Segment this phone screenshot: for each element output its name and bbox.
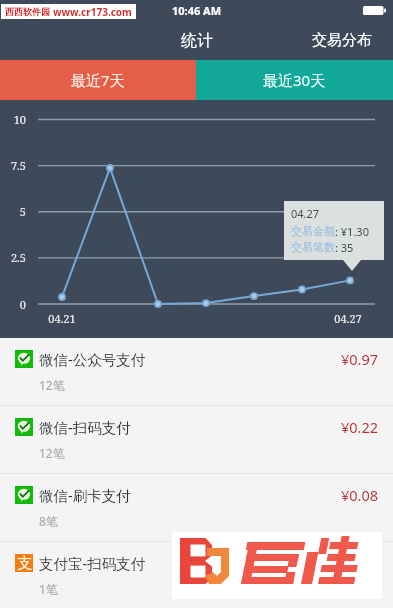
staticText: 统计 xyxy=(181,31,213,51)
staticText: 支付宝-扫码支付 xyxy=(39,553,146,573)
staticText: 交易分布 xyxy=(312,31,372,50)
staticText: 12笔 xyxy=(39,377,65,393)
button[interactable]: 微信-扫码支付 xyxy=(0,406,393,473)
button[interactable]: 支 xyxy=(0,542,393,608)
staticText: 5 xyxy=(0,204,26,219)
staticText: ¥0.97 xyxy=(341,349,379,369)
staticText: 04.21 xyxy=(42,311,82,326)
staticText: 支 xyxy=(17,554,32,572)
staticText: 1笔 xyxy=(39,581,58,597)
staticText: ¥0.01 xyxy=(341,553,379,573)
staticText: www.cr173.com xyxy=(53,5,132,19)
button[interactable]: 最近30天 xyxy=(196,60,393,100)
staticText: ¥0.08 xyxy=(341,485,379,505)
staticText: 10:46 AM xyxy=(172,3,222,18)
staticText: 12笔 xyxy=(39,445,65,461)
staticText: 最近30天 xyxy=(263,70,326,90)
staticText: 微信-刷卡支付 xyxy=(39,485,131,505)
other: Battery full xyxy=(363,5,386,16)
button[interactable]: 微信-公众号支付 xyxy=(0,338,393,405)
staticText: 最近7天 xyxy=(71,70,125,90)
button[interactable]: 微信-刷卡支付 xyxy=(0,474,393,541)
staticText: 10 xyxy=(0,112,26,127)
staticText: ¥0.22 xyxy=(341,417,379,437)
staticText: 微信-扫码支付 xyxy=(39,417,131,437)
staticText: 微信-公众号支付 xyxy=(39,349,146,369)
staticText: 0 xyxy=(0,297,26,312)
staticText: 交易笔数 xyxy=(291,240,335,254)
staticText: 04.27 xyxy=(328,311,368,326)
staticText: 交易金额 xyxy=(291,224,335,238)
staticText: 8笔 xyxy=(39,513,58,529)
button[interactable]: 最近7天 xyxy=(0,60,196,100)
staticText: 2.5 xyxy=(0,250,26,265)
button[interactable]: 交易分布 xyxy=(291,21,393,60)
staticText: : ¥1.30 xyxy=(335,224,369,239)
staticText: 04.27 xyxy=(291,206,320,221)
staticText: 西西软件园 xyxy=(5,6,50,17)
staticText: 7.5 xyxy=(0,158,26,173)
staticText: : 35 xyxy=(335,240,354,255)
